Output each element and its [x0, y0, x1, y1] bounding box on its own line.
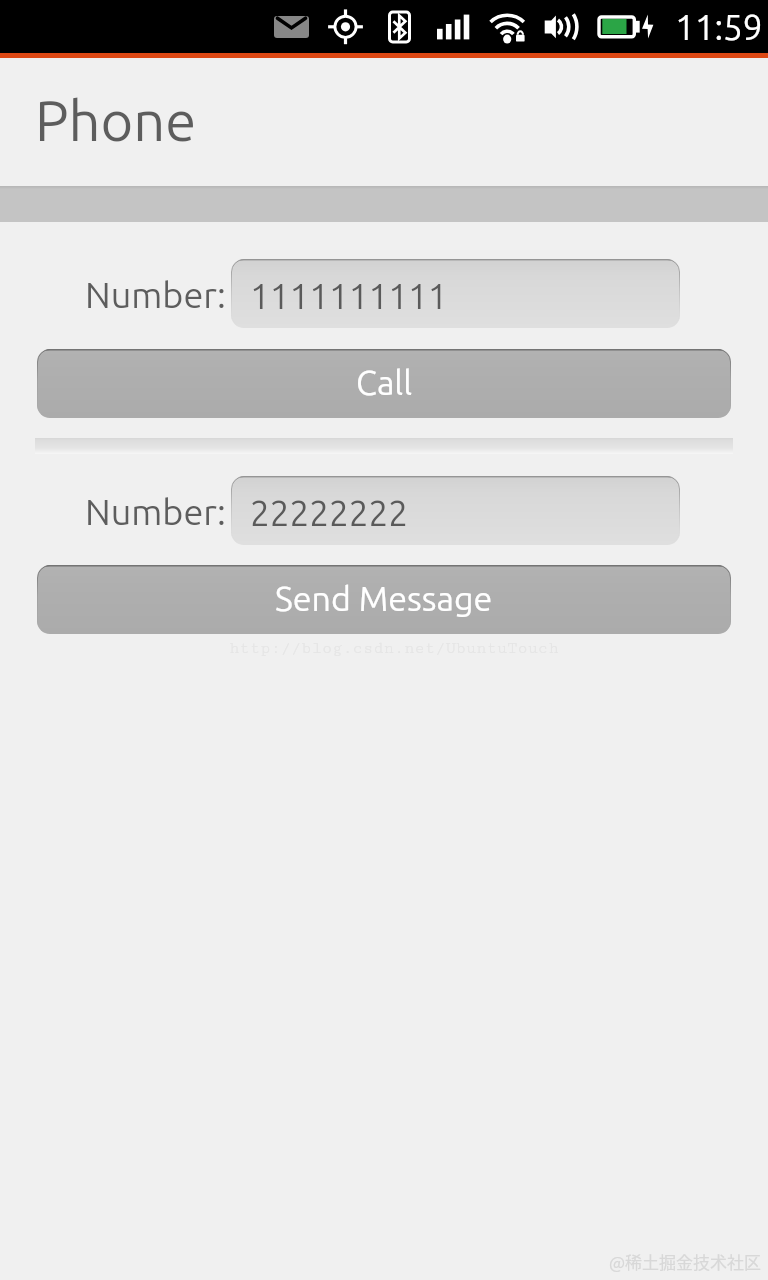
staticText: @稀土掘金技术社区 [609, 1249, 762, 1274]
button[interactable]: Send Message [37, 565, 731, 634]
staticText: Send Message [275, 579, 493, 617]
staticText: Number: [85, 274, 226, 314]
staticText: 11:59 [675, 7, 763, 46]
staticText: Phone [35, 89, 197, 152]
button[interactable]: Call [37, 349, 731, 418]
staticText: 22222222 [250, 493, 408, 532]
staticText: Call [356, 363, 413, 401]
staticText: 1111111111 [250, 276, 448, 315]
other: Status indicators: messages, location, b… [0, 0, 768, 53]
button[interactable]: Phone number to call [231, 259, 680, 328]
button[interactable]: Phone number to message [231, 476, 680, 545]
staticText: Number: [85, 491, 226, 531]
